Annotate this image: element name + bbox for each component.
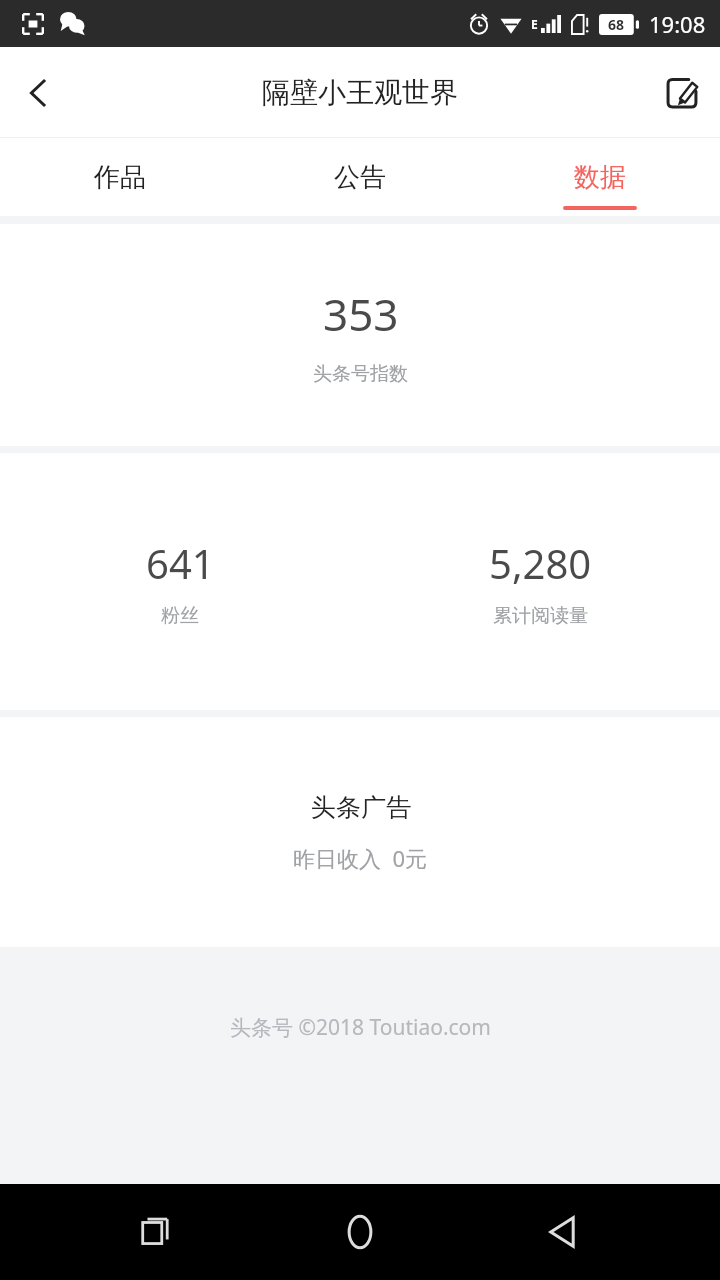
staticText: 头条广告 bbox=[311, 792, 411, 823]
staticText: 19:08 bbox=[649, 9, 706, 39]
button[interactable]: 641 bbox=[0, 453, 360, 710]
staticText: 累计阅读量 bbox=[493, 604, 588, 628]
staticText: 5,280 bbox=[489, 536, 592, 590]
button[interactable]: 353 bbox=[0, 224, 720, 446]
staticText: 头条号 ©2018 Toutiao.com bbox=[230, 1013, 491, 1042]
staticText: E bbox=[531, 16, 538, 32]
button[interactable]: 作品 bbox=[0, 138, 240, 216]
staticText: 641 bbox=[146, 536, 215, 590]
staticText: 粉丝 bbox=[161, 604, 199, 628]
button[interactable]: Recents bbox=[111, 1186, 203, 1278]
staticText: 数据 bbox=[574, 161, 626, 194]
button[interactable]: Back bbox=[0, 55, 76, 131]
button[interactable]: Back bbox=[517, 1186, 609, 1278]
staticText: 公告 bbox=[334, 161, 386, 194]
button[interactable]: Home bbox=[314, 1186, 406, 1278]
staticText: 68 bbox=[608, 15, 625, 34]
staticText: 头条号指数 bbox=[313, 362, 408, 386]
button[interactable]: Edit bbox=[644, 55, 720, 131]
staticText: 353 bbox=[323, 284, 399, 344]
button[interactable]: 5,280 bbox=[360, 453, 720, 710]
button[interactable]: 公告 bbox=[240, 138, 480, 216]
button[interactable]: 头条广告 bbox=[0, 717, 720, 947]
button[interactable]: 数据 bbox=[480, 138, 720, 216]
staticText: 昨日收入 0元 bbox=[293, 843, 428, 873]
staticText: 作品 bbox=[94, 161, 146, 194]
staticText: 隔壁小王观世界 bbox=[262, 75, 458, 110]
